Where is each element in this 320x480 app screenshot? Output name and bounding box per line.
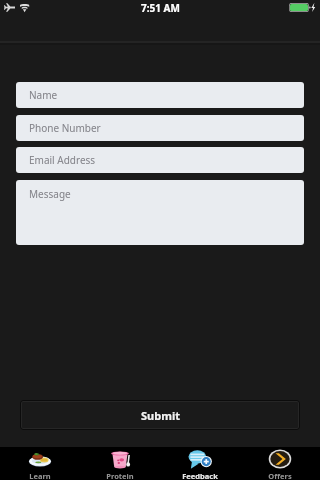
staticText: Learn xyxy=(29,471,51,480)
button[interactable]: Submit xyxy=(20,400,300,430)
button[interactable]: Name xyxy=(16,82,304,108)
staticText: Protein xyxy=(106,471,134,480)
staticText: 7:51 AM xyxy=(141,1,180,15)
staticText: Message xyxy=(29,187,71,201)
button[interactable]: Email Address xyxy=(16,147,304,173)
staticText: Name xyxy=(29,88,58,102)
staticText: Submit xyxy=(141,408,180,423)
staticText: Offers xyxy=(268,471,292,480)
button[interactable]: Offers xyxy=(240,447,320,480)
button[interactable]: Learn xyxy=(0,447,80,480)
staticText: Email Address xyxy=(29,153,96,167)
staticText: Feedback xyxy=(182,471,218,480)
staticText: Phone Number xyxy=(29,121,101,135)
button[interactable]: Message xyxy=(16,180,304,245)
button[interactable]: Phone Number xyxy=(16,115,304,141)
button[interactable]: Feedback xyxy=(160,447,240,480)
button[interactable]: Protein xyxy=(80,447,160,480)
